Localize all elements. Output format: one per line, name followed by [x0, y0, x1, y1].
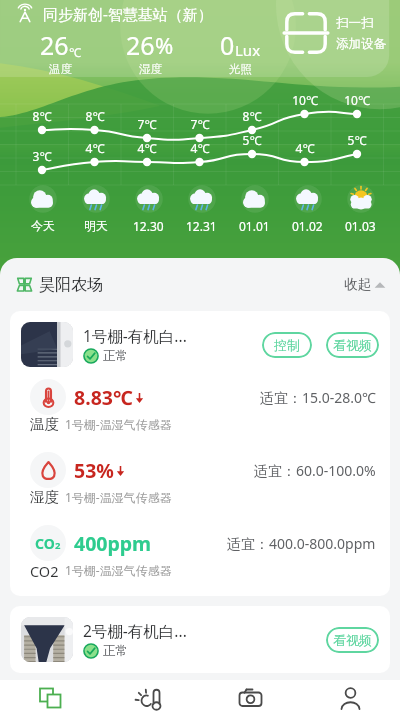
- button[interactable]: 相机: [200, 680, 300, 711]
- staticText: 5℃: [331, 132, 383, 148]
- staticText: 400ppm: [74, 530, 152, 557]
- button[interactable]: 我的: [300, 680, 400, 711]
- staticText: 昊阳农场: [39, 275, 103, 295]
- staticText: 同步新创-智慧基站（新）: [43, 4, 213, 24]
- staticText: 7℃: [121, 116, 173, 132]
- staticText: 湿度: [30, 488, 59, 506]
- staticText: 看视频: [333, 337, 372, 353]
- staticText: ℃: [69, 44, 81, 60]
- button[interactable]: 看视频: [326, 627, 379, 653]
- button[interactable]: 控制: [262, 332, 312, 358]
- button[interactable]: 收起: [344, 276, 386, 293]
- staticText: 2: [55, 539, 61, 552]
- staticText: 4℃: [69, 140, 121, 156]
- staticText: 10℃: [331, 92, 383, 108]
- staticText: 8℃: [226, 108, 278, 124]
- button[interactable]: 环境监测: [100, 680, 200, 711]
- staticText: 收起: [344, 276, 371, 293]
- staticText: CO: [35, 534, 55, 553]
- staticText: 温度: [49, 62, 72, 76]
- staticText: 1号棚-有机白...: [83, 325, 187, 346]
- staticText: 5℃: [226, 132, 278, 148]
- staticText: 温度: [30, 415, 59, 433]
- staticText: 2号棚-有机白...: [83, 620, 187, 641]
- staticText: 正常: [103, 643, 128, 659]
- staticText: 26: [40, 28, 69, 62]
- staticText: %: [155, 30, 174, 60]
- staticText: 湿度: [139, 62, 162, 76]
- staticText: 53%: [74, 457, 114, 484]
- staticText: 12.31: [186, 218, 217, 234]
- staticText: 4℃: [121, 140, 173, 156]
- button[interactable]: 1号棚-有机白...: [21, 322, 379, 367]
- staticText: 26: [126, 28, 155, 62]
- staticText: 0: [220, 28, 235, 62]
- staticText: 正常: [103, 348, 128, 364]
- staticText: 3℃: [16, 148, 68, 164]
- staticText: Lux: [235, 40, 261, 60]
- staticText: 添加设备: [336, 36, 386, 52]
- staticText: 01.03: [345, 218, 376, 234]
- staticText: 明天: [84, 218, 108, 233]
- staticText: 12.30: [133, 218, 164, 234]
- button[interactable]: 2号棚-有机白...: [21, 617, 379, 662]
- staticText: 01.02: [292, 218, 323, 234]
- staticText: 7℃: [174, 116, 226, 132]
- staticText: 适宜：400.0-800.0ppm: [227, 534, 376, 553]
- staticText: CO2: [30, 561, 59, 579]
- button[interactable]: 首页: [0, 680, 100, 711]
- staticText: 今天: [31, 218, 55, 233]
- staticText: 10℃: [279, 92, 331, 108]
- staticText: 8℃: [16, 108, 68, 124]
- staticText: 控制: [274, 337, 300, 353]
- staticText: 1号棚-温湿气传感器: [65, 489, 172, 505]
- staticText: 4℃: [174, 140, 226, 156]
- staticText: 8.83℃: [74, 384, 133, 411]
- staticText: 01.01: [239, 218, 270, 234]
- staticText: 扫一扫: [336, 15, 374, 31]
- staticText: 适宜：60.0-100.0%: [254, 461, 376, 480]
- staticText: 8℃: [69, 108, 121, 124]
- button[interactable]: 看视频: [326, 332, 379, 358]
- button[interactable]: 扫一扫 添加设备: [282, 9, 386, 57]
- staticText: 适宜：15.0-28.0℃: [260, 388, 376, 407]
- staticText: 光照: [229, 62, 252, 76]
- staticText: 看视频: [333, 632, 372, 648]
- staticText: 1号棚-温湿气传感器: [65, 416, 172, 432]
- staticText: 1号棚-温湿气传感器: [65, 562, 172, 578]
- staticText: 4℃: [279, 140, 331, 156]
